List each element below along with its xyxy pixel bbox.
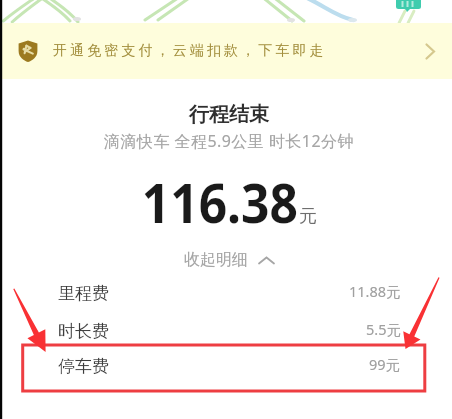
staticText: 116.38 bbox=[142, 165, 298, 239]
other: More bbox=[425, 43, 436, 60]
staticText: 时长费 bbox=[58, 321, 109, 342]
staticText: 收起明细 bbox=[184, 250, 248, 270]
button[interactable]: 收起明细 bbox=[184, 250, 275, 270]
staticText: 元 bbox=[299, 205, 317, 228]
staticText: 99元 bbox=[369, 354, 401, 374]
staticText: 5.5元 bbox=[366, 319, 401, 339]
staticText: 停车费 bbox=[58, 356, 109, 377]
button[interactable]: 时长费 bbox=[0, 313, 452, 349]
staticText: 行程结束 bbox=[3, 102, 452, 127]
staticText: 里程费 bbox=[58, 283, 109, 304]
staticText: 开通免密支付，云端扣款，下车即走 bbox=[53, 42, 327, 60]
button[interactable]: 开通免密支付，云端扣款，下车即走 bbox=[0, 23, 452, 79]
staticText: 11.88元 bbox=[349, 281, 401, 301]
button[interactable]: 里程费 bbox=[0, 275, 452, 311]
button[interactable]: 停车费 bbox=[0, 348, 452, 384]
staticText: 滴滴快车 全程5.9公里 时长12分钟 bbox=[3, 130, 452, 152]
